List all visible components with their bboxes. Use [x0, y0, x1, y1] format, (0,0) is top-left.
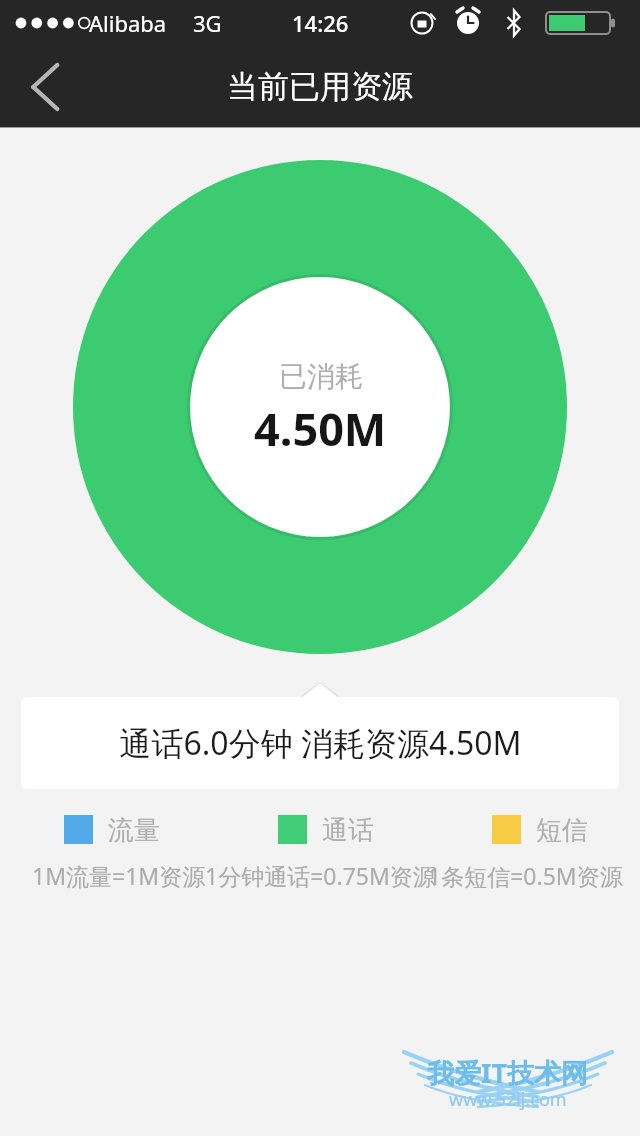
staticText: Alibaba — [89, 8, 167, 38]
staticText: 14:26 — [292, 8, 349, 38]
staticText: 流量 — [108, 814, 160, 844]
staticText: 4.50M — [254, 398, 387, 459]
button[interactable]: 通话 — [278, 814, 374, 844]
staticText: www.52ij.com — [449, 1087, 567, 1112]
staticText: 通话6.0分钟 消耗资源4.50M — [119, 721, 522, 765]
staticText: 通话 — [322, 814, 374, 844]
button[interactable]: 短信 — [492, 814, 588, 844]
staticText: 1M流量=1M资源 — [32, 860, 206, 890]
staticText: 1分钟通话=0.75M资源 — [205, 860, 436, 890]
staticText: 当前已用资源 — [227, 67, 413, 106]
button[interactable]: Back — [0, 45, 76, 128]
staticText: 1条短信=0.5M资源 — [428, 860, 623, 890]
staticText: 已消耗 — [279, 359, 363, 394]
staticText: 3G — [193, 8, 222, 38]
staticText: 短信 — [536, 814, 588, 844]
staticText: 我爱IT技术网 — [427, 1054, 589, 1091]
button[interactable]: 流量 — [64, 814, 160, 844]
button[interactable]: 通话6.0分钟 消耗资源4.50M — [21, 697, 619, 789]
